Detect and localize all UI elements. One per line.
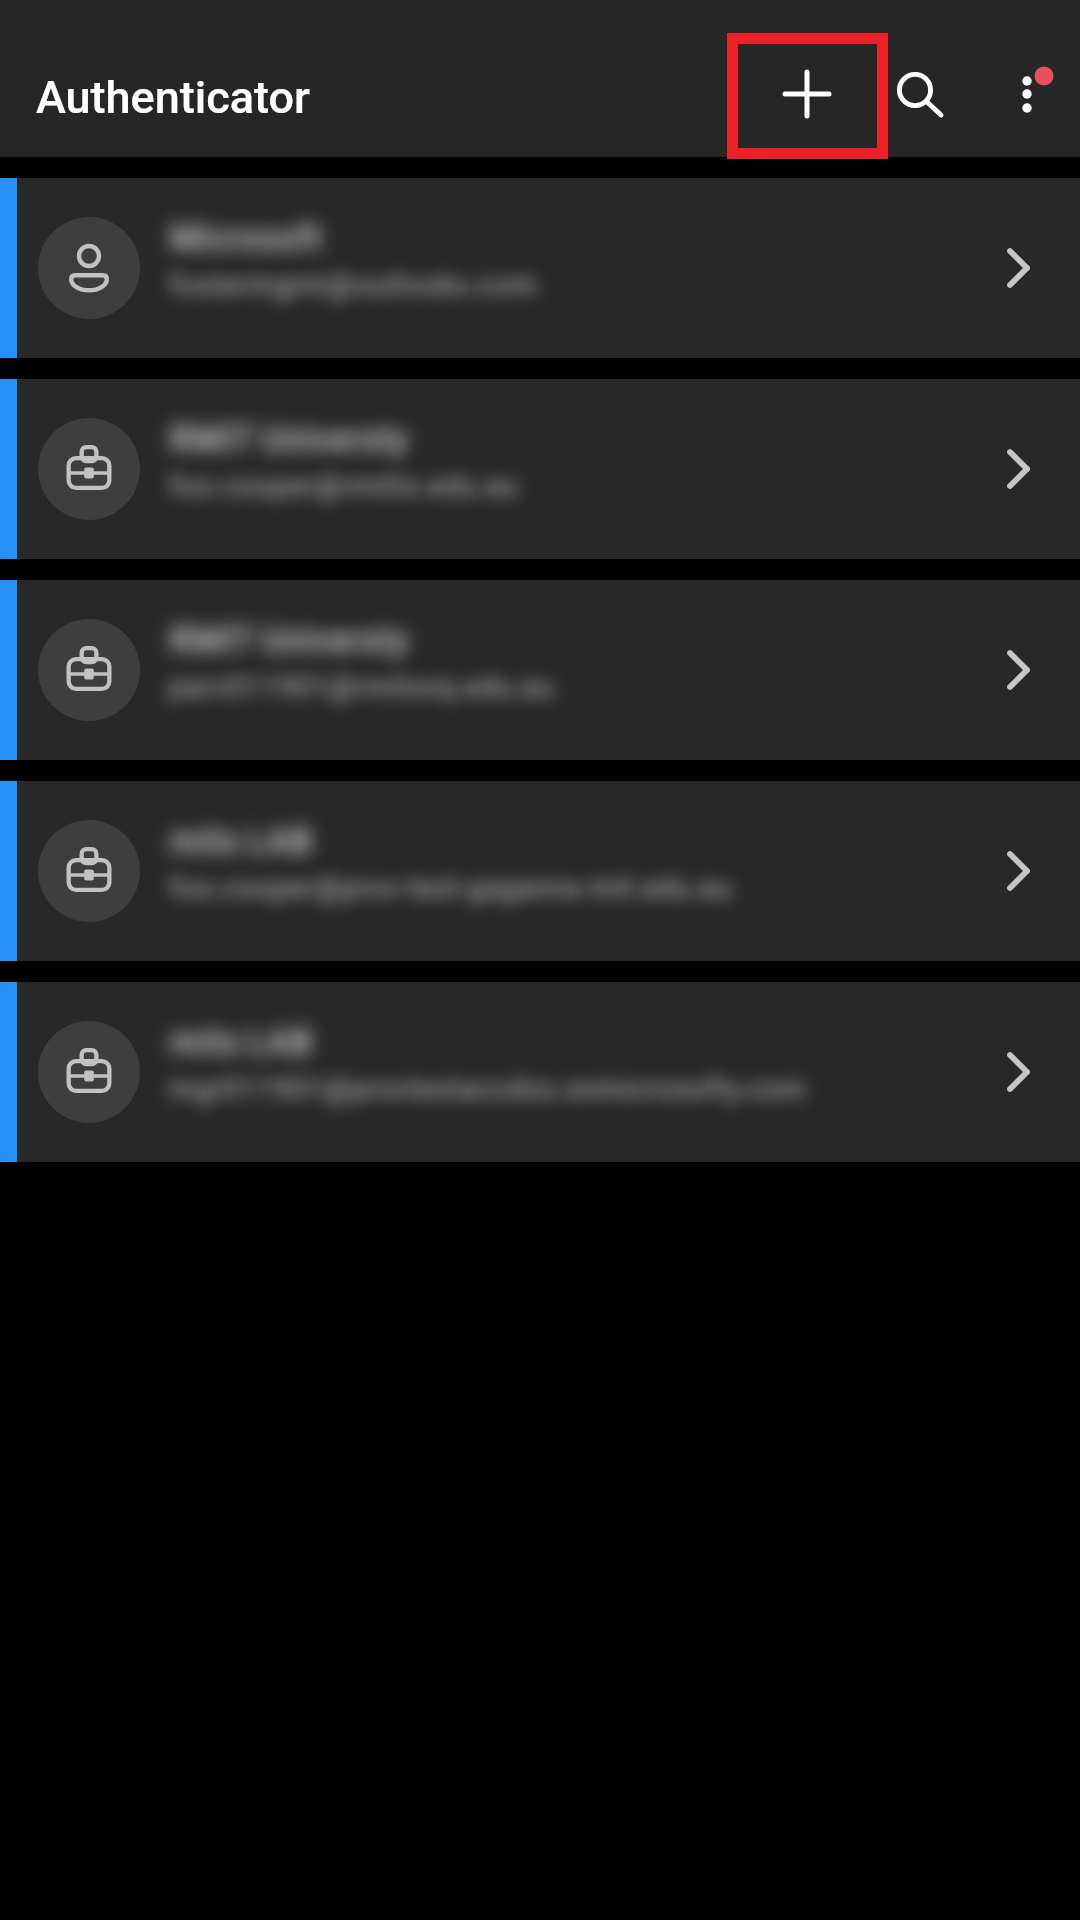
button[interactable]: Search bbox=[865, 40, 965, 140]
staticText: parv011901@rmitxxq.edu.au bbox=[169, 669, 554, 704]
staticText: foo.cooper@rmittx.edu.au bbox=[169, 468, 518, 503]
staticText: foo.cooper@prov-test-gagannx-mit.edu.au bbox=[169, 870, 732, 905]
staticText: RMIT Universty bbox=[170, 419, 408, 460]
button[interactable]: RMIT Universty bbox=[0, 580, 1080, 760]
button[interactable]: RMIT Universty bbox=[0, 379, 1080, 559]
staticText: mitx LAB bbox=[170, 821, 312, 862]
staticText: fostermgmt@outlookx.com bbox=[169, 267, 537, 302]
staticText: mitx LAB bbox=[170, 1022, 312, 1063]
button[interactable]: Add account bbox=[727, 33, 888, 159]
button[interactable]: More options bbox=[977, 44, 1077, 144]
button[interactable]: Microsoft bbox=[0, 178, 1080, 358]
button[interactable]: mitx LAB bbox=[0, 781, 1080, 961]
staticText: Authenticator bbox=[36, 71, 310, 124]
button[interactable]: mitx LAB bbox=[0, 982, 1080, 1162]
staticText: Microsoft bbox=[170, 218, 322, 259]
staticText: mgr011901@provtestaccdss.onmicrosofty.co… bbox=[169, 1071, 806, 1106]
staticText: RMIT Universty bbox=[170, 620, 408, 661]
